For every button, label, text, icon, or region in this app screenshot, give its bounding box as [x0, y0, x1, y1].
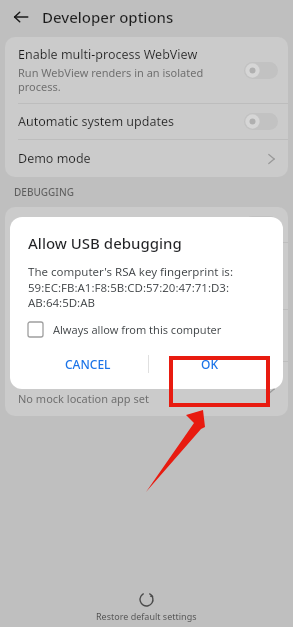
staticText: Monitor apps installed by ADB	[18, 252, 196, 269]
staticText: Automatic system updates	[18, 113, 174, 130]
button[interactable]: Allow USB debugging	[5, 207, 288, 242]
staticText: Allow USB debugging	[18, 216, 145, 233]
staticText: Developer options	[42, 7, 174, 27]
staticText: Enable multi-process WebView	[18, 46, 198, 63]
button[interactable]: Always allow from this computer	[28, 322, 222, 337]
button[interactable]: Back	[8, 4, 34, 30]
button[interactable]: Monitor apps installed by ADB	[5, 243, 288, 309]
staticText: The computer's RSA key fingerprint is: 5…	[28, 264, 233, 310]
button[interactable]: Demo mode	[5, 140, 288, 177]
staticText: No mock location app set	[18, 391, 149, 406]
button[interactable]: Automatic system updates	[5, 104, 288, 139]
staticText: Demo mode	[18, 150, 91, 167]
staticText: CANCEL	[65, 356, 111, 372]
staticText: DEBUGGING	[14, 185, 74, 199]
staticText: Restore default settings	[96, 610, 197, 622]
staticText: Always allow from this computer	[53, 322, 222, 337]
staticText: Allow ADB debugging in charge only mode	[18, 319, 204, 352]
staticText: Run WebView renders in an isolated proce…	[18, 65, 204, 94]
staticText: Require user confirmation when apps are …	[18, 271, 213, 300]
staticText: OK	[201, 356, 218, 372]
button[interactable]: Select mock location app	[5, 362, 288, 416]
button[interactable]: Enable multi-process WebView	[5, 37, 288, 103]
button[interactable]: CANCEL	[28, 347, 148, 381]
staticText: Allow USB debugging	[28, 233, 182, 253]
button[interactable]: OK	[149, 347, 269, 381]
button[interactable]: Allow ADB debugging in charge only mode	[5, 310, 288, 361]
button[interactable]: Restore default settings	[0, 587, 293, 627]
